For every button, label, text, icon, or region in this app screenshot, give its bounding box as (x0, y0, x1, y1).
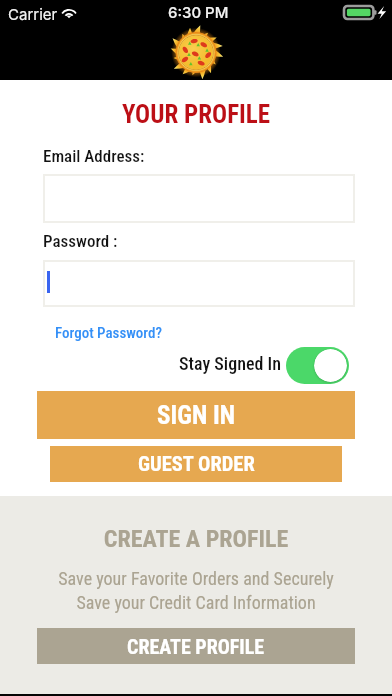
staticText: 6:30 PM (168, 3, 229, 21)
button[interactable]: Stay Signed In toggle (286, 347, 349, 384)
button[interactable]: Password input (43, 260, 355, 307)
button[interactable]: CREATE PROFILE (37, 628, 355, 664)
button[interactable]: SIGN IN (37, 391, 355, 439)
button[interactable]: Email Address input (43, 174, 355, 223)
staticText: CREATE A PROFILE (0, 525, 392, 553)
staticText: Forgot Password? (55, 324, 162, 342)
button[interactable]: GUEST ORDER (50, 446, 342, 482)
staticText: Save your Favorite Orders and Securely S… (0, 568, 392, 613)
staticText: SIGN IN (157, 401, 236, 430)
staticText: GUEST ORDER (138, 452, 255, 476)
staticText: Email Address: (43, 146, 145, 166)
staticText: Carrier (8, 5, 58, 23)
button[interactable]: Forgot Password? (51, 320, 166, 346)
staticText: Stay Signed In (179, 353, 282, 374)
staticText: YOUR PROFILE (0, 100, 392, 129)
staticText: Password : (43, 231, 118, 251)
staticText: CREATE PROFILE (127, 635, 265, 658)
